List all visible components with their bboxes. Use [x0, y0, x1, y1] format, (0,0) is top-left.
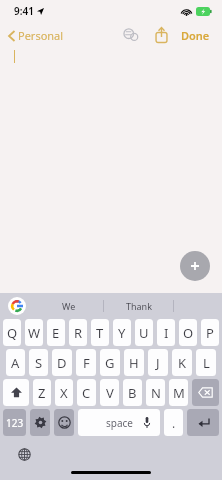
- button[interactable]: Y: [113, 319, 131, 346]
- button[interactable]: Emoji: [54, 409, 74, 436]
- staticText: D: [57, 354, 67, 372]
- staticText: O: [183, 324, 194, 342]
- button[interactable]: T: [91, 319, 109, 346]
- button[interactable]: .: [164, 409, 183, 436]
- button[interactable]: Settings: [30, 409, 50, 436]
- staticText: E: [52, 324, 60, 342]
- staticText: P: [206, 324, 214, 342]
- button[interactable]: Shift: [3, 379, 29, 406]
- button[interactable]: J: [148, 349, 168, 376]
- staticText: V: [106, 384, 114, 402]
- button[interactable]: Share: [149, 23, 173, 47]
- staticText: 123: [6, 416, 24, 430]
- button[interactable]: E: [47, 319, 65, 346]
- staticText: U: [139, 324, 149, 342]
- staticText: Q: [7, 324, 18, 342]
- staticText: We: [62, 300, 76, 312]
- button[interactable]: Backspace: [192, 379, 219, 406]
- button[interactable]: U: [135, 319, 153, 346]
- staticText: J: [156, 354, 160, 372]
- staticText: L: [203, 354, 210, 372]
- staticText: Done: [181, 28, 210, 43]
- staticText: Thank: [126, 300, 152, 312]
- button[interactable]: V: [100, 379, 119, 406]
- button[interactable]: B: [123, 379, 142, 406]
- button[interactable]: C: [77, 379, 96, 406]
- staticText: C: [82, 384, 91, 402]
- button[interactable]: Z: [33, 379, 51, 406]
- button[interactable]: A: [6, 349, 25, 376]
- staticText: I: [164, 324, 169, 342]
- button[interactable]: H: [124, 349, 144, 376]
- button[interactable]: P: [201, 319, 219, 346]
- staticText: G: [105, 354, 115, 372]
- staticText: Y: [118, 324, 126, 342]
- button[interactable]: Thank: [104, 293, 173, 319]
- staticText: X: [60, 384, 68, 402]
- staticText: B: [128, 384, 137, 402]
- staticText: T: [96, 324, 104, 342]
- button[interactable]: K: [172, 349, 192, 376]
- button[interactable]: L: [196, 349, 216, 376]
- staticText: R: [74, 324, 83, 342]
- staticText: S: [35, 354, 43, 372]
- button[interactable]: I: [157, 319, 175, 346]
- button[interactable]: 123: [3, 409, 26, 436]
- button[interactable]: Change keyboard language: [14, 444, 34, 464]
- staticText: K: [178, 354, 187, 372]
- button[interactable]: Enter: [187, 409, 219, 436]
- staticText: A: [11, 354, 20, 372]
- staticText: M: [173, 384, 185, 402]
- button[interactable]: Add: [180, 251, 210, 281]
- button[interactable]: We: [34, 293, 103, 319]
- staticText: Personal: [18, 28, 64, 43]
- button[interactable]: N: [146, 379, 165, 406]
- button[interactable]: Collaborate: [119, 23, 143, 47]
- staticText: W: [28, 324, 41, 342]
- button[interactable]: O: [179, 319, 197, 346]
- button[interactable]: S: [29, 349, 48, 376]
- button[interactable]: Personal: [6, 26, 66, 45]
- staticText: N: [151, 384, 161, 402]
- button[interactable]: Q: [3, 319, 21, 346]
- staticText: H: [129, 354, 139, 372]
- button[interactable]: G: [100, 349, 120, 376]
- button[interactable]: X: [55, 379, 73, 406]
- staticText: F: [83, 354, 90, 372]
- button[interactable]: Google: [8, 297, 26, 315]
- staticText: space: [106, 416, 133, 430]
- button[interactable]: F: [76, 349, 96, 376]
- staticText: .: [172, 415, 176, 431]
- button[interactable]: M: [169, 379, 188, 406]
- button[interactable]: D: [52, 349, 72, 376]
- button[interactable]: R: [69, 319, 87, 346]
- button[interactable]: Done: [177, 24, 214, 47]
- staticText: 9:41: [14, 4, 34, 18]
- staticText: Z: [38, 384, 46, 402]
- button[interactable]: W: [25, 319, 43, 346]
- button[interactable]: space: [78, 409, 160, 436]
